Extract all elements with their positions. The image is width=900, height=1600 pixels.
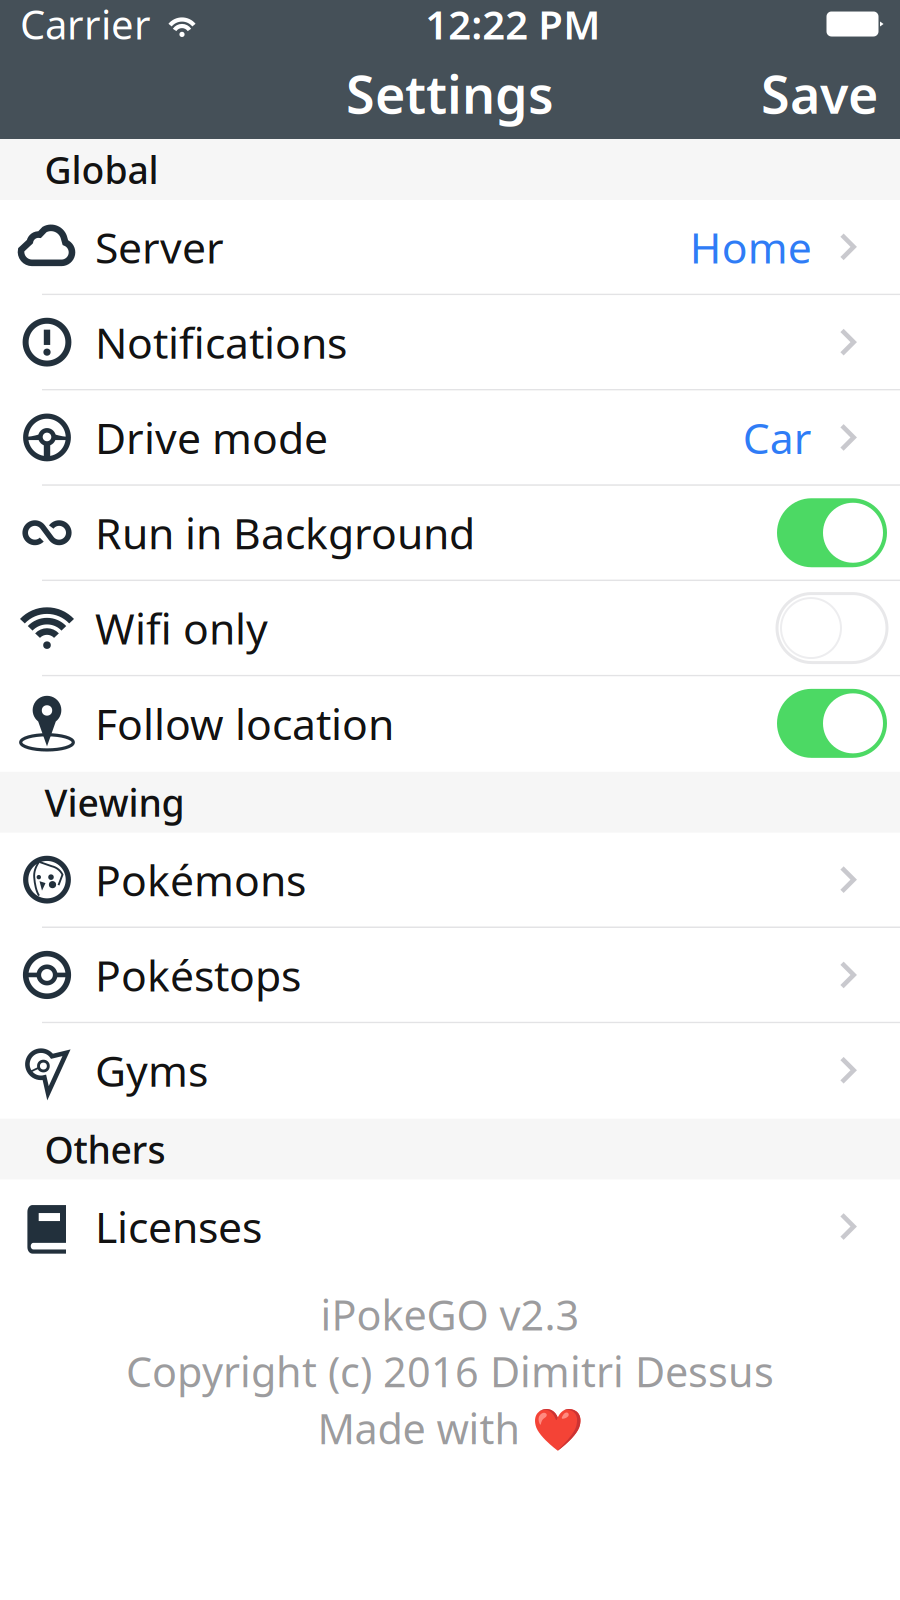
button[interactable]: Pokéstops <box>0 928 900 1023</box>
button[interactable]: Licenses <box>0 1180 900 1275</box>
staticText: Carrier <box>20 0 151 50</box>
staticText: Run in Background <box>95 504 475 561</box>
staticText: Viewing <box>44 777 184 827</box>
staticText: Home <box>690 218 812 275</box>
button[interactable]: Wifi only <box>0 581 900 676</box>
button[interactable]: Gyms <box>0 1023 900 1119</box>
staticText: Others <box>44 1124 165 1174</box>
button[interactable]: Run in Background <box>0 486 900 581</box>
staticText: Pokéstops <box>95 947 301 1003</box>
button[interactable]: Pokémons <box>0 833 900 928</box>
staticText: iPokeGO v2.3 <box>320 1287 579 1342</box>
button[interactable]: Follow location <box>0 676 900 772</box>
staticText: Wifi only <box>95 600 268 656</box>
staticText: Follow location <box>95 695 394 752</box>
staticText: Drive mode <box>95 409 328 466</box>
staticText: Global <box>44 145 158 194</box>
staticText: Licenses <box>95 1198 262 1255</box>
staticText: Made with ❤️ <box>317 1401 582 1456</box>
button[interactable]: Drive mode <box>0 391 900 486</box>
staticText: Gyms <box>95 1042 208 1099</box>
button[interactable]: Save <box>739 45 900 142</box>
staticText: Copyright (c) 2016 Dimitri Dessus <box>126 1344 774 1399</box>
staticText: Save <box>761 59 878 128</box>
staticText: Car <box>743 409 812 466</box>
staticText: Settings <box>346 59 554 128</box>
staticText: 12:22 PM <box>425 0 600 50</box>
button[interactable]: Server <box>0 200 900 295</box>
staticText: Server <box>95 218 224 275</box>
staticText: Pokémons <box>95 851 306 908</box>
button[interactable]: Notifications <box>0 295 900 391</box>
staticText: Notifications <box>95 314 347 370</box>
